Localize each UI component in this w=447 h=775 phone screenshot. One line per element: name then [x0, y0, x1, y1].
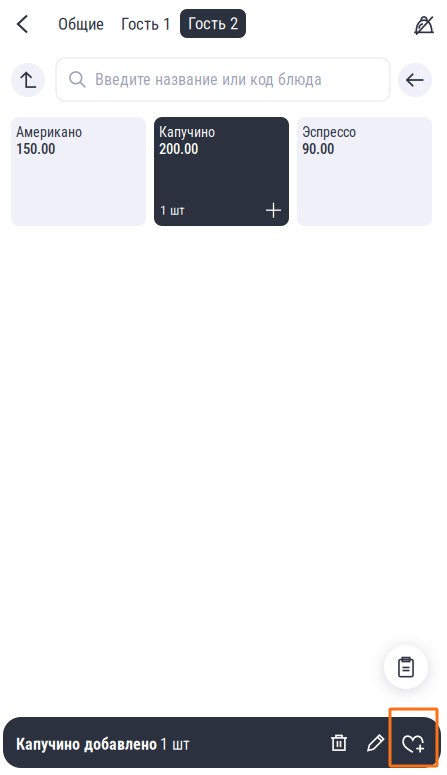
- button[interactable]: Капучино: [154, 117, 289, 226]
- button[interactable]: Add to favourites: [390, 715, 437, 772]
- staticText: 1 шт: [160, 202, 185, 218]
- button[interactable]: Back: [398, 63, 432, 97]
- button[interactable]: Американо: [11, 117, 146, 226]
- staticText: 90.00: [302, 140, 334, 158]
- staticText: Капучино добавлено: [16, 735, 157, 754]
- staticText: 1 шт: [157, 735, 190, 754]
- button[interactable]: Move up: [11, 63, 45, 97]
- button[interactable]: Общие: [49, 9, 113, 39]
- button[interactable]: Гость 2: [180, 9, 246, 38]
- button[interactable]: Back: [3, 5, 41, 43]
- button[interactable]: Гость 1: [112, 9, 180, 39]
- staticText: 150.00: [16, 140, 55, 158]
- staticText: Общие: [58, 14, 104, 34]
- staticText: Американо: [16, 124, 82, 140]
- button[interactable]: Service off: [405, 6, 443, 44]
- button[interactable]: Edit: [356, 717, 396, 768]
- staticText: 200.00: [159, 140, 198, 158]
- button[interactable]: Эспрессо: [297, 117, 432, 226]
- button[interactable]: Delete: [319, 717, 359, 768]
- button[interactable]: Order list: [384, 645, 428, 689]
- staticText: Капучино: [159, 124, 215, 140]
- staticText: Гость 2: [188, 14, 238, 33]
- staticText: Эспрессо: [302, 124, 356, 140]
- staticText: Гость 1: [121, 14, 171, 34]
- staticText: Введите название или код блюда: [95, 70, 322, 89]
